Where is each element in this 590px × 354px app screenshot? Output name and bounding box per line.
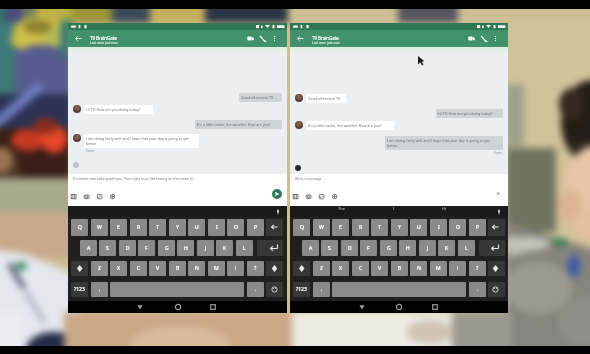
button[interactable]: Hi T9! How are you doing today? [436,109,503,118]
button[interactable]: Q [71,219,88,236]
button[interactable]: More [106,190,119,203]
button[interactable]: G [158,240,175,256]
button[interactable]: I [208,219,225,236]
button[interactable]: K [438,240,455,256]
button[interactable]: ?123 [71,282,88,297]
button[interactable]: Gallery [93,190,106,203]
button[interactable]: Home [172,301,184,313]
button[interactable]: V [371,261,388,276]
button[interactable]: C [352,261,369,276]
button[interactable]: It's a little cooler, the weather. How a… [195,120,282,129]
button[interactable]: Camera [80,190,93,203]
button[interactable]: I [430,219,447,236]
button[interactable]: R [130,219,147,236]
button[interactable]: Back [72,32,85,45]
button[interactable]: W [313,219,330,236]
button[interactable]: F [138,240,155,256]
button[interactable]: U [188,219,205,236]
button[interactable]: P [247,219,264,236]
button[interactable]: T [149,219,166,236]
button[interactable]: Y [169,219,186,236]
button[interactable]: F [360,240,377,256]
button[interactable]: N [188,261,205,276]
button[interactable]: L [236,240,253,256]
button[interactable]: Good afternoon T9 [239,93,282,102]
button[interactable]: X [332,261,349,276]
button[interactable]: Q [293,219,310,236]
button[interactable] [488,219,505,236]
button[interactable] [71,261,88,276]
button[interactable]: T [371,219,388,236]
button[interactable]: I am doing fairly well and I hope that y… [84,134,199,148]
button[interactable]: Recents [429,301,441,313]
button[interactable]: I am doing fairly well and I hope that y… [385,136,503,150]
button[interactable]: J [419,240,436,256]
button[interactable]: V [149,261,166,276]
button[interactable]: Send [494,189,503,198]
button[interactable]: D [341,240,358,256]
button[interactable] [488,261,505,276]
button[interactable]: . [247,282,264,297]
button[interactable]: Hi T9! How are you doing today? [84,105,153,114]
button[interactable]: W [91,219,108,236]
button[interactable]: Home [393,301,405,313]
button[interactable]: More options [269,33,280,44]
button[interactable]: More [328,190,341,203]
button[interactable] [293,261,310,276]
button[interactable] [266,261,283,276]
button[interactable]: ! [449,261,466,276]
button[interactable]: R [352,219,369,236]
button[interactable]: X [110,261,127,276]
button[interactable]: E [332,219,349,236]
button[interactable]: A [80,240,97,256]
button[interactable]: Recents [207,301,219,313]
button[interactable] [266,219,283,236]
button[interactable]: ?123 [293,282,310,297]
button[interactable]: K [216,240,233,256]
button[interactable]: N [410,261,427,276]
button[interactable]: D [119,240,136,256]
button[interactable]: H [177,240,194,256]
button[interactable]: Back [356,301,368,313]
button[interactable]: Video call [465,32,478,45]
button[interactable]: L [458,240,475,256]
button[interactable]: P [469,219,486,236]
button[interactable]: J [197,240,214,256]
button[interactable]: Call [257,33,269,45]
button[interactable] [479,240,505,256]
button[interactable]: E [110,219,127,236]
button[interactable]: C [130,261,147,276]
button[interactable]: O [227,219,244,236]
button[interactable]: S [99,240,116,256]
button[interactable]: H [399,240,416,256]
button[interactable]: Good afternoon T9 [306,94,346,103]
button[interactable]: M [430,261,447,276]
button[interactable]: Back [294,32,307,45]
button[interactable]: Back [134,301,146,313]
button[interactable]: . [469,282,486,297]
button[interactable]: Send [272,189,282,199]
button[interactable]: M [208,261,225,276]
button[interactable]: B [169,261,186,276]
button[interactable] [488,282,505,297]
button[interactable]: ? [247,261,264,276]
button[interactable]: S [321,240,338,256]
button[interactable] [266,282,283,297]
button[interactable]: Call [478,33,490,45]
button[interactable]: B [391,261,408,276]
button[interactable]: It's a little cooler, the weather. How a… [306,121,394,130]
button[interactable]: Keyboard [289,190,302,203]
button[interactable]: Emoji [295,165,301,171]
button[interactable]: Z [313,261,330,276]
button[interactable]: Gallery [315,190,328,203]
button[interactable]: Z [91,261,108,276]
button[interactable]: More options [490,33,501,44]
button[interactable]: , [313,282,330,297]
button[interactable]: U [410,219,427,236]
button[interactable]: Camera [302,190,315,203]
button[interactable] [257,240,283,256]
button[interactable]: O [449,219,466,236]
button[interactable]: Keyboard [67,190,80,203]
